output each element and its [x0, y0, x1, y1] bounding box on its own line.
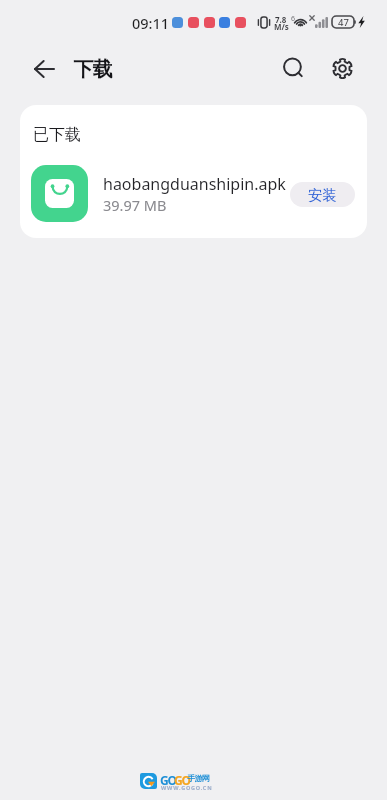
- staticText: WWW.GOGO.CN: [161, 784, 213, 791]
- staticText: 已下载: [33, 125, 81, 145]
- staticText: GO: [174, 772, 190, 788]
- staticText: M/s: [274, 21, 289, 32]
- staticText: 47: [338, 16, 349, 28]
- staticText: 下载: [74, 57, 112, 82]
- button[interactable]: [20, 160, 367, 228]
- staticText: 39.97 MB: [103, 195, 167, 215]
- button[interactable]: Search: [273, 48, 314, 89]
- staticText: 6: [291, 14, 296, 24]
- button[interactable]: Back: [24, 48, 65, 89]
- staticText: 09:11: [132, 13, 170, 33]
- button[interactable]: Settings: [322, 48, 363, 89]
- staticText: 安装: [308, 186, 337, 204]
- staticText: GO: [160, 772, 176, 788]
- staticText: haobangduanshipin.apk: [103, 173, 286, 195]
- button[interactable]: 安装: [290, 182, 355, 207]
- staticText: 手游网: [188, 773, 209, 783]
- staticText: 7.8: [275, 14, 287, 25]
